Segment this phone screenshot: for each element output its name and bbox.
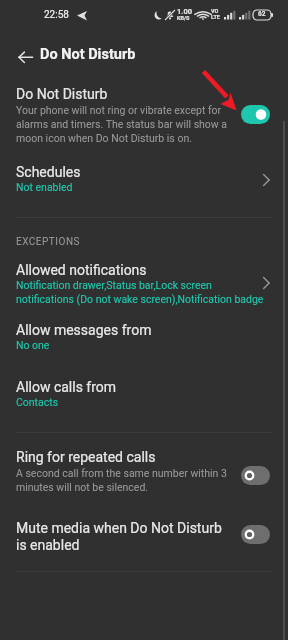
button[interactable]: Allow messages from — [0, 318, 288, 362]
staticText: Do Not Disturb — [40, 46, 136, 63]
staticText: 22:58 — [44, 9, 69, 21]
staticText: Not enabled — [16, 181, 73, 193]
staticText: Ring for repeated calls — [16, 449, 156, 465]
staticText: 62 — [258, 10, 266, 18]
staticText: Allow messages from — [16, 322, 152, 338]
button[interactable]: Ring for repeated calls — [0, 444, 288, 502]
button[interactable]: Allow calls from — [0, 375, 288, 419]
button[interactable]: Schedules — [0, 158, 288, 206]
staticText: Do Not Disturb — [16, 86, 108, 102]
button[interactable]: Back — [4, 36, 46, 78]
staticText: Allowed notifications — [16, 262, 147, 278]
staticText: Contacts — [16, 396, 59, 408]
staticText: Allow calls from — [16, 379, 117, 395]
staticText: Schedules — [16, 164, 81, 180]
button[interactable]: Turn on — [241, 466, 270, 485]
staticText: KB/S — [177, 15, 190, 21]
staticText: 1.00 — [177, 7, 193, 16]
staticText: VO LTE — [211, 8, 220, 20]
button[interactable]: Turn on — [241, 525, 270, 544]
button[interactable]: Do Not Disturb — [0, 81, 288, 153]
staticText: Your phone will not ring or vibrate exce… — [16, 104, 232, 145]
button[interactable]: Turn off — [241, 105, 270, 124]
staticText: Notification drawer,Status bar,Lock scre… — [16, 279, 264, 306]
staticText: No one — [16, 339, 50, 351]
staticText: Mute media when Do Not Disturb is enable… — [16, 520, 232, 554]
staticText: EXCEPTIONS — [16, 236, 80, 248]
button[interactable]: Mute media when Do Not Disturb is enable… — [0, 515, 288, 565]
button[interactable]: Allowed notifications — [0, 258, 288, 310]
staticText: A second call from the same number withi… — [16, 467, 232, 494]
